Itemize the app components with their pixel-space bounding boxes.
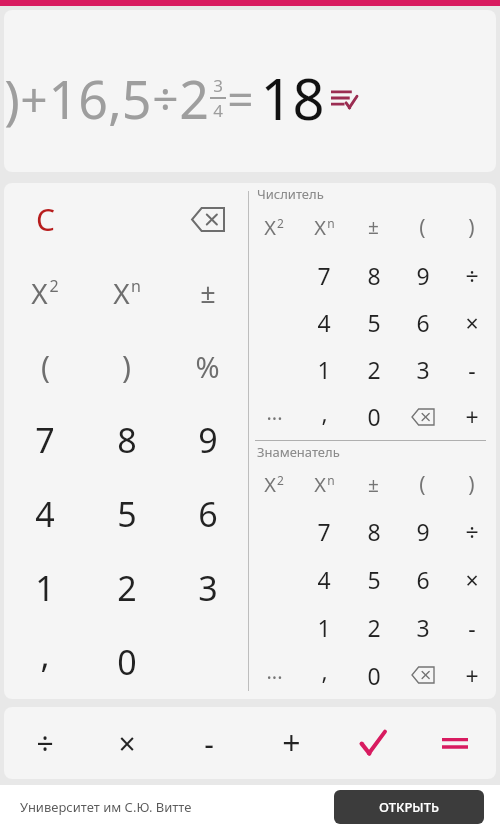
button[interactable]: 0: [349, 393, 398, 440]
button[interactable]: ): [4, 10, 496, 172]
button[interactable]: 1: [299, 346, 349, 393]
button[interactable]: 7: [299, 251, 349, 299]
button[interactable]: ,: [299, 393, 349, 440]
button[interactable]: X: [299, 461, 349, 508]
button[interactable]: 3: [398, 603, 447, 651]
button[interactable]: 4: [4, 477, 86, 551]
button[interactable]: 9: [398, 251, 447, 299]
button[interactable]: 1: [4, 551, 86, 625]
button[interactable]: Backspace: [398, 651, 447, 699]
button[interactable]: X: [86, 256, 167, 329]
button[interactable]: +: [447, 393, 496, 440]
staticText: n: [327, 215, 335, 231]
button[interactable]: X: [249, 203, 299, 251]
staticText: ±: [368, 214, 379, 240]
button[interactable]: (: [4, 329, 86, 403]
staticText: 9: [416, 260, 430, 291]
button[interactable]: ): [447, 461, 496, 508]
button[interactable]: Confirm: [332, 707, 414, 779]
button[interactable]: 5: [349, 555, 398, 603]
button[interactable]: -: [168, 707, 250, 779]
button[interactable]: 0: [349, 651, 398, 699]
button[interactable]: 6: [398, 555, 447, 603]
button[interactable]: ±: [349, 461, 398, 508]
button[interactable]: X: [249, 461, 299, 508]
button[interactable]: Backspace: [398, 393, 447, 440]
button[interactable]: +: [250, 707, 332, 779]
button[interactable]: 6: [167, 477, 248, 551]
button[interactable]: ±: [167, 256, 248, 329]
button[interactable]: ±: [349, 203, 398, 251]
staticText: (: [419, 470, 426, 499]
button[interactable]: 6: [398, 299, 447, 346]
button[interactable]: 8: [86, 403, 167, 477]
button[interactable]: 5: [349, 299, 398, 346]
button[interactable]: Backspace: [167, 183, 248, 256]
button[interactable]: 4: [299, 299, 349, 346]
staticText: ÷: [36, 723, 54, 764]
button[interactable]: 2: [349, 603, 398, 651]
staticText: =: [227, 67, 254, 130]
staticText: 5: [117, 491, 137, 537]
button[interactable]: 9: [167, 403, 248, 477]
button[interactable]: 7: [299, 508, 349, 555]
button[interactable]: 3: [398, 346, 447, 393]
button[interactable]: (: [398, 203, 447, 251]
button[interactable]: X: [299, 203, 349, 251]
button[interactable]: 9: [398, 508, 447, 555]
staticText: 4: [317, 564, 331, 595]
button[interactable]: %: [167, 329, 248, 403]
button[interactable]: C: [4, 183, 86, 256]
button[interactable]: ...: [249, 651, 299, 699]
button[interactable]: X: [4, 256, 86, 329]
button[interactable]: 3: [167, 551, 248, 625]
staticText: 5: [367, 307, 381, 338]
button[interactable]: -: [447, 346, 496, 393]
button[interactable]: ×: [86, 707, 168, 779]
button[interactable]: ,: [4, 625, 86, 699]
button[interactable]: 2: [86, 551, 167, 625]
button[interactable]: 2: [349, 346, 398, 393]
staticText: ÷: [465, 516, 479, 547]
staticText: 9: [198, 417, 218, 463]
button[interactable]: 0: [86, 625, 167, 699]
button[interactable]: ОТКРЫТЬ: [334, 790, 484, 824]
staticText: 8: [367, 516, 381, 547]
button[interactable]: ): [86, 329, 167, 403]
staticText: X: [264, 471, 276, 498]
button[interactable]: 1: [299, 603, 349, 651]
button[interactable]: ÷: [447, 508, 496, 555]
button[interactable]: 7: [4, 403, 86, 477]
staticText: 1: [317, 612, 331, 643]
staticText: Знаменатель: [257, 443, 340, 461]
button[interactable]: ÷: [4, 707, 86, 779]
staticText: X: [113, 274, 130, 312]
button[interactable]: ÷: [447, 251, 496, 299]
button[interactable]: ...: [249, 393, 299, 440]
button[interactable]: Университет им С.Ю. Витте: [0, 785, 500, 829]
button[interactable]: 5: [86, 477, 167, 551]
button[interactable]: ×: [447, 299, 496, 346]
staticText: X: [31, 274, 48, 312]
button[interactable]: ×: [447, 555, 496, 603]
button[interactable]: 4: [299, 555, 349, 603]
button[interactable]: ,: [299, 651, 349, 699]
button[interactable]: +: [447, 651, 496, 699]
button[interactable]: ): [447, 203, 496, 251]
button[interactable]: -: [447, 603, 496, 651]
button[interactable]: 8: [349, 508, 398, 555]
button[interactable]: (: [398, 461, 447, 508]
staticText: 2: [277, 215, 284, 231]
staticText: 4: [213, 99, 223, 122]
staticText: +: [465, 660, 479, 691]
button[interactable]: 8: [349, 251, 398, 299]
button[interactable]: Equals: [414, 707, 496, 779]
